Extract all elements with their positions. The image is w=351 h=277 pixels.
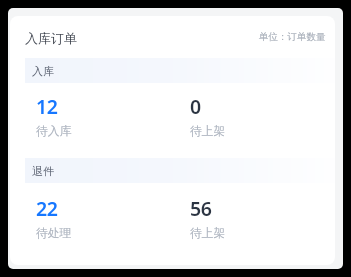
staticText: 退件	[32, 164, 54, 178]
button[interactable]: 待上架 56	[190, 195, 335, 255]
staticText: 待上架	[190, 226, 226, 241]
staticText: 0	[190, 93, 201, 120]
staticText: 12	[36, 93, 58, 120]
staticText: 入库订单	[25, 30, 77, 46]
button[interactable]: 入库	[25, 58, 335, 83]
staticText: 入库	[32, 64, 54, 78]
button[interactable]: 退件	[25, 158, 335, 183]
staticText: 单位：订单数量	[259, 31, 326, 43]
button[interactable]: 待处理 22	[36, 195, 181, 255]
staticText: 待入库	[36, 124, 72, 139]
staticText: 待上架	[190, 124, 226, 139]
button[interactable]: 入库订单	[10, 16, 335, 58]
staticText: 56	[190, 195, 212, 222]
button[interactable]: 待入库 12	[36, 93, 181, 153]
staticText: 22	[36, 195, 58, 222]
button[interactable]: 待上架 0	[190, 93, 335, 153]
staticText: 待处理	[36, 226, 72, 241]
